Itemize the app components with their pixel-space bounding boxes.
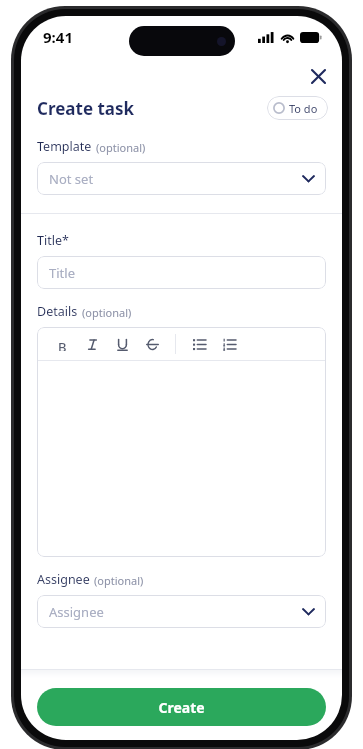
- staticText: (optional): [82, 305, 132, 320]
- button[interactable]: Title: [37, 256, 326, 289]
- button[interactable]: [37, 361, 326, 557]
- staticText: Assignee: [49, 603, 104, 621]
- button[interactable]: Create: [37, 688, 326, 726]
- staticText: Assignee: [37, 571, 90, 588]
- button[interactable]: Close: [302, 60, 334, 92]
- button[interactable]: Assignee: [37, 595, 326, 628]
- staticText: Create: [158, 698, 205, 717]
- staticText: Details: [37, 303, 78, 320]
- button[interactable]: Underline: [107, 330, 137, 358]
- staticText: Create task: [37, 97, 135, 120]
- button[interactable]: Italic: [77, 330, 107, 358]
- button[interactable]: Numbered list: [214, 330, 244, 358]
- staticText: Not set: [49, 170, 94, 188]
- staticText: Title: [49, 264, 75, 282]
- button[interactable]: Not set: [37, 162, 326, 195]
- staticText: (optional): [94, 573, 144, 588]
- staticText: 9:41: [43, 27, 73, 47]
- staticText: B: [58, 338, 67, 351]
- button[interactable]: Bold: [47, 330, 77, 358]
- staticText: To do: [289, 101, 318, 116]
- staticText: (optional): [96, 140, 146, 155]
- staticText: Template: [37, 138, 92, 155]
- button[interactable]: Bulleted list: [184, 330, 214, 358]
- button[interactable]: To do: [267, 96, 328, 120]
- button[interactable]: Strikethrough: [137, 330, 167, 358]
- staticText: Title*: [37, 232, 69, 249]
